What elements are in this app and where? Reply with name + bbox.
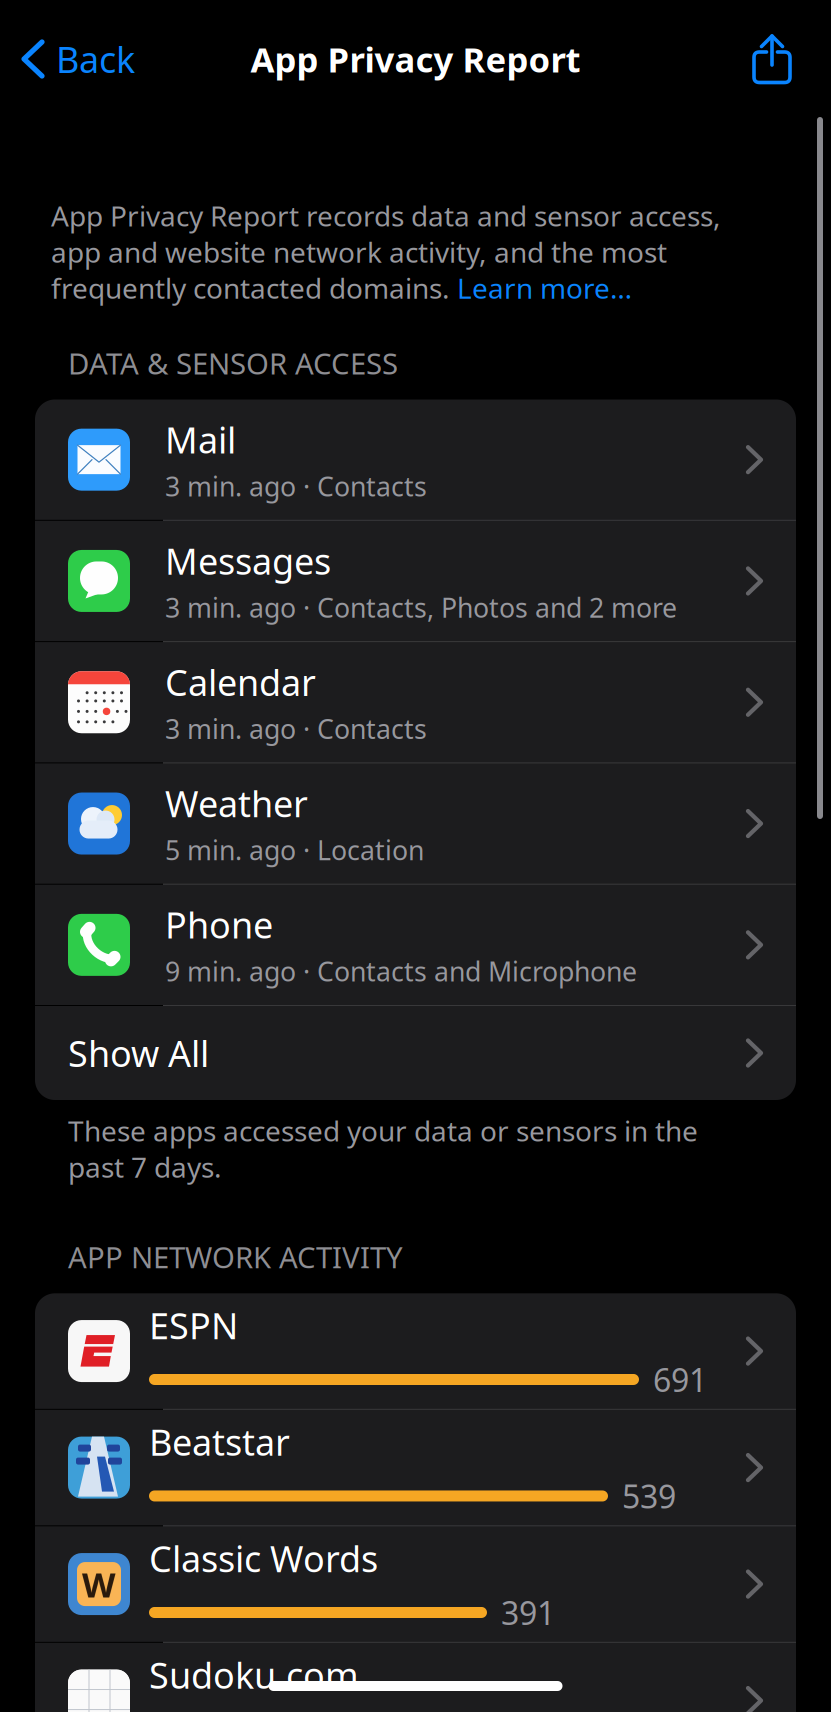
staticText: 7 (113, 1707, 124, 1712)
staticText: Calendar (165, 658, 316, 706)
staticText: 3 min. ago · Contacts (165, 711, 427, 746)
staticText: Phone (165, 901, 273, 948)
staticText: 3 (113, 1667, 124, 1694)
staticText: app and website network activity, and th… (51, 233, 667, 270)
staticText: 1 (73, 1667, 84, 1694)
staticText: 539 (622, 1475, 676, 1517)
staticText: These apps accessed your data or sensors… (68, 1112, 698, 1149)
staticText: Messages (165, 537, 331, 585)
button[interactable]: Mail (35, 399, 796, 520)
staticText: App Privacy Report (250, 36, 580, 82)
staticText: 5 min. ago · Location (165, 832, 424, 868)
staticText: 9 min. ago · Contacts and Microphone (165, 953, 637, 989)
staticText: DATA & SENSOR ACCESS (68, 343, 398, 382)
button[interactable]: Show All (35, 1006, 796, 1100)
button[interactable]: Messages (35, 521, 796, 641)
button[interactable]: Calendar (35, 642, 796, 762)
staticText: Mail (165, 415, 236, 463)
staticText: Back (56, 35, 135, 83)
staticText: Sudoku.com (149, 1651, 359, 1699)
staticText: past 7 days. (68, 1148, 222, 1185)
staticText: 2 (93, 1667, 104, 1694)
staticText: ESPN (149, 1301, 238, 1349)
staticText: 8 (73, 1707, 84, 1712)
button[interactable]: Share (740, 0, 831, 118)
staticText: App Privacy Report records data and sens… (51, 197, 721, 234)
staticText: frequently contacted domains. (51, 269, 457, 307)
staticText: Classic Words (149, 1534, 378, 1582)
staticText: 4 (113, 1687, 124, 1712)
staticText: W (82, 1561, 116, 1607)
button[interactable]: Phone (35, 885, 796, 1005)
staticText: 5 (93, 1707, 104, 1712)
staticText: Weather (165, 779, 308, 827)
button[interactable]: 1 (35, 1643, 796, 1712)
button[interactable]: W (35, 1526, 796, 1642)
staticText: 391 (501, 1591, 555, 1634)
staticText: Show All (68, 1029, 209, 1077)
staticText: Beatstar (149, 1418, 290, 1466)
button[interactable]: Beatstar (35, 1410, 796, 1525)
button[interactable]: ESPN (35, 1293, 796, 1409)
button[interactable]: Back (0, 0, 147, 118)
staticText: 6 (73, 1687, 84, 1712)
staticText: Learn more… (457, 269, 632, 307)
button[interactable]: Weather (35, 763, 796, 884)
staticText: APP NETWORK ACTIVITY (68, 1237, 403, 1276)
staticText: 691 (653, 1358, 707, 1401)
staticText: 3 min. ago · Contacts, Photos and 2 more (165, 590, 677, 625)
staticText: 3 min. ago · Contacts (165, 468, 427, 504)
